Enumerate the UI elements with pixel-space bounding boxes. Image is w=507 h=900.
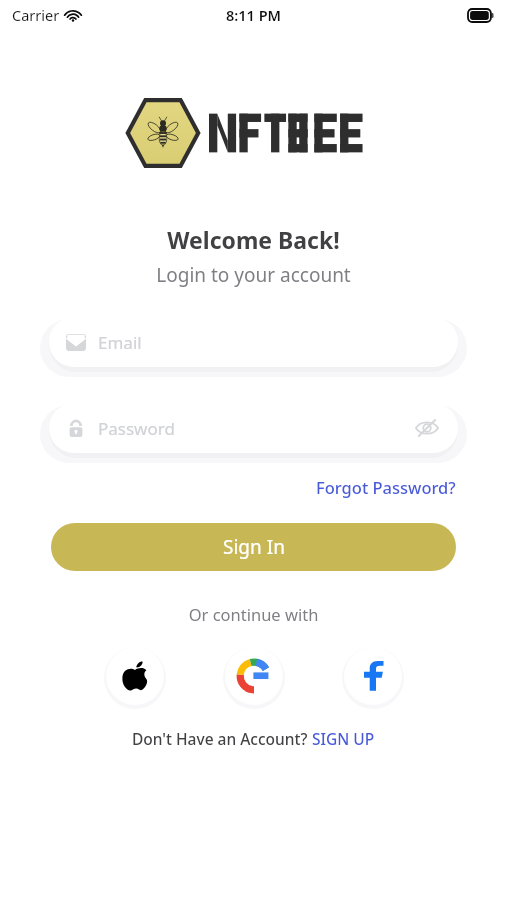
staticText: Don't Have an Account?: [132, 728, 312, 749]
button[interactable]: Sign in with Apple: [106, 647, 164, 705]
staticText: SIGN UP: [312, 728, 375, 749]
staticText: Sign In: [223, 534, 285, 560]
button[interactable]: Password: [49, 403, 458, 453]
button[interactable]: Sign in with Google: [225, 647, 283, 705]
staticText: Welcome Back!: [0, 224, 507, 255]
staticText: Password: [98, 417, 414, 440]
button[interactable]: Sign In: [51, 523, 456, 571]
button[interactable]: Forgot Password?: [314, 473, 458, 501]
staticText: Forgot Password?: [316, 476, 456, 498]
button[interactable]: Show password: [414, 415, 440, 441]
staticText: Or continue with: [0, 603, 507, 625]
staticText: 8:11 PM: [226, 5, 282, 25]
button[interactable]: Email: [49, 317, 458, 367]
staticText: Carrier: [12, 5, 60, 25]
button[interactable]: Sign in with Facebook: [344, 647, 402, 705]
staticText: Login to your account: [0, 262, 507, 288]
button[interactable]: SIGN UP: [312, 728, 375, 749]
staticText: Email: [98, 331, 440, 354]
